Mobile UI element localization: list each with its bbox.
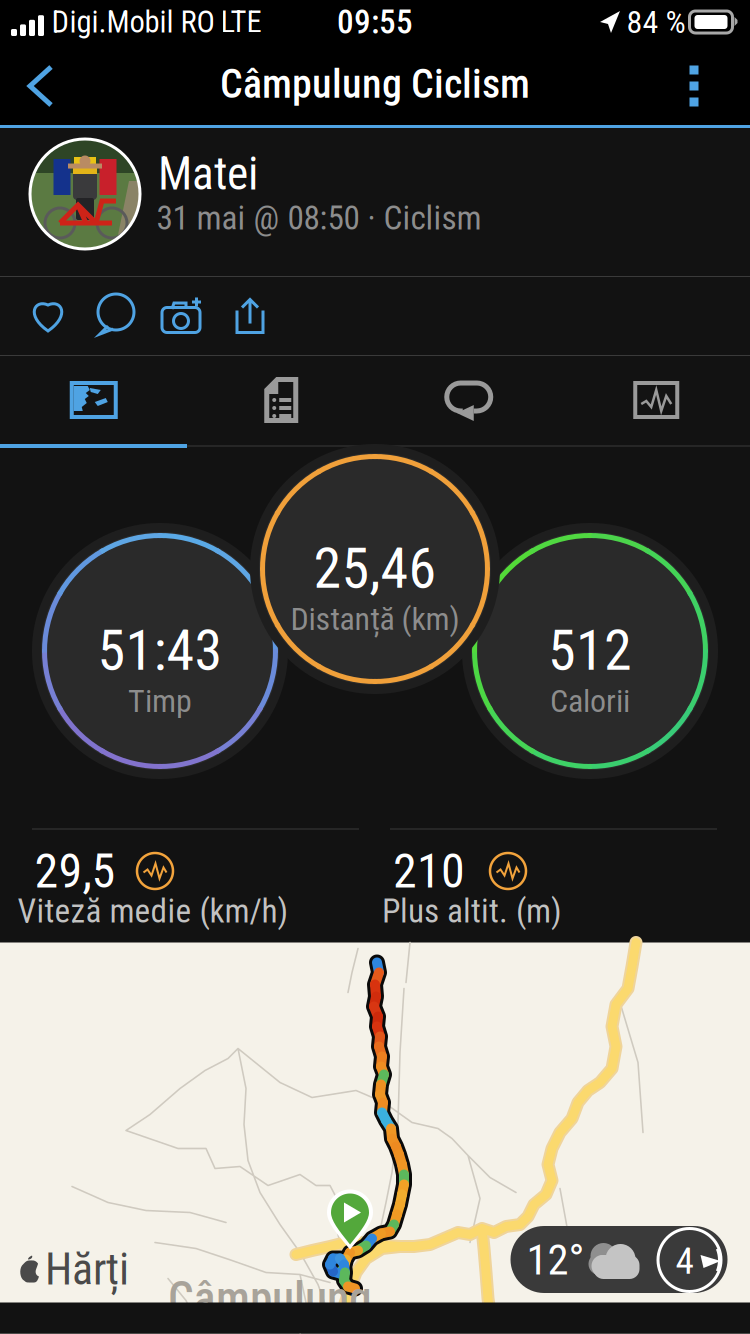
button[interactable]: Map <box>0 356 187 444</box>
staticText: 25,46 <box>313 536 436 601</box>
staticText: 29,5 <box>34 843 115 899</box>
staticText: 84 % <box>626 3 685 41</box>
button[interactable]: Laps <box>375 356 562 444</box>
staticText: Hărți <box>45 1244 129 1295</box>
staticText: Distanță (km) <box>290 600 459 638</box>
button[interactable]: Back <box>0 46 82 126</box>
staticText: 31 mai @ 08:50 · Ciclism <box>156 198 481 238</box>
staticText: Câmpulung <box>168 1272 372 1325</box>
staticText: 51:43 <box>97 618 222 683</box>
staticText: 512 <box>548 618 632 683</box>
staticText: Plus altit. (m) <box>382 891 562 931</box>
button[interactable]: Add photo <box>150 277 216 355</box>
staticText: Digi.Mobil RO <box>51 4 214 40</box>
button[interactable]: Charts <box>562 356 750 444</box>
staticText: Calorii <box>550 682 630 720</box>
staticText: 4 <box>675 1239 693 1283</box>
button[interactable]: Share <box>217 277 283 355</box>
button[interactable]: More options <box>654 46 734 126</box>
staticText: 12° <box>526 1235 584 1285</box>
staticText: Viteză medie (km/h) <box>17 891 288 931</box>
button[interactable]: Comment <box>84 277 150 355</box>
staticText: 09:55 <box>337 2 413 42</box>
staticText: Timp <box>128 682 192 720</box>
staticText: 210 <box>393 843 465 899</box>
staticText: LTE <box>220 4 261 40</box>
staticText: Matei <box>158 147 258 200</box>
staticText: Câmpulung Ciclism <box>220 61 530 107</box>
button[interactable]: Like <box>15 277 81 355</box>
button[interactable]: Details <box>187 356 375 444</box>
